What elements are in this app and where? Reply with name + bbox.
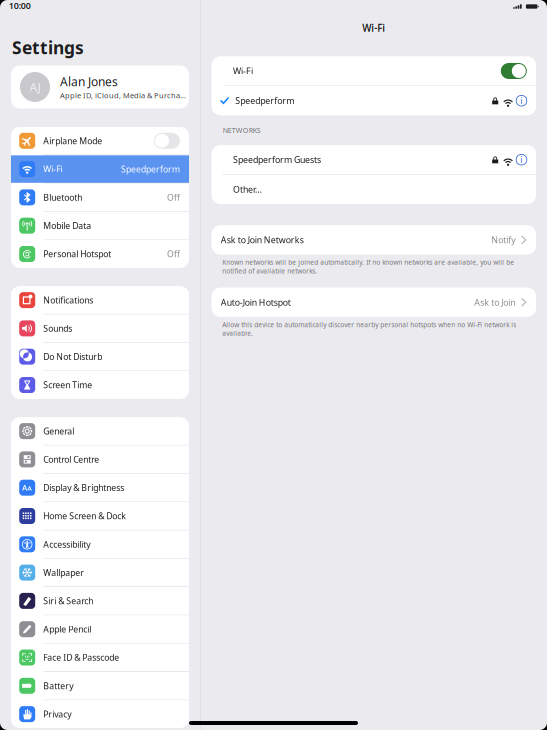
staticText: Airplane Mode xyxy=(43,135,102,146)
staticText: Control Centre xyxy=(43,454,99,465)
button[interactable]: Privacy xyxy=(11,700,189,728)
button[interactable]: Face ID & Passcode xyxy=(11,644,189,671)
staticText: Known networks will be joined automatica… xyxy=(222,258,514,275)
staticText: Settings xyxy=(12,36,84,59)
staticText: Allow this device to automatically disco… xyxy=(222,320,516,338)
button[interactable]: Control Centre xyxy=(11,446,189,473)
staticText: Sounds xyxy=(43,323,72,334)
button[interactable]: Notifications xyxy=(11,286,189,314)
button[interactable]: Home Screen & Dock xyxy=(11,502,189,530)
staticText: Screen Time xyxy=(43,379,92,391)
button[interactable]: Wallpaper xyxy=(11,559,189,586)
button[interactable]: Ask to Join Networks xyxy=(212,225,536,254)
staticText: Notify xyxy=(491,234,515,246)
staticText: Off xyxy=(167,192,180,203)
button[interactable]: Sounds xyxy=(11,315,189,342)
staticText: Display & Brightness xyxy=(43,482,124,493)
button[interactable]: Accessibility xyxy=(11,530,189,558)
button[interactable]: Apple Pencil xyxy=(11,615,189,643)
staticText: Speedperform xyxy=(235,95,294,107)
button[interactable]: Battery xyxy=(11,672,189,700)
button[interactable]: Wi-Fi xyxy=(212,56,536,85)
staticText: Ask to Join Networks xyxy=(221,234,304,246)
button[interactable]: Display & Brightness xyxy=(11,474,189,501)
button[interactable]: Speedperform xyxy=(212,86,536,115)
button[interactable]: Mobile Data xyxy=(11,212,189,239)
staticText: i xyxy=(520,95,522,107)
staticText: Mobile Data xyxy=(43,220,91,231)
button[interactable]: Screen Time xyxy=(11,371,189,399)
button[interactable]: AJ xyxy=(11,65,189,108)
staticText: Home Screen & Dock xyxy=(43,510,126,522)
staticText: Speedperform Guests xyxy=(233,154,321,166)
staticText: Face ID & Passcode xyxy=(43,652,119,663)
staticText: Do Not Disturb xyxy=(43,351,102,362)
staticText: NETWORKS xyxy=(223,125,261,135)
staticText: Off xyxy=(167,248,180,260)
staticText: Ask to Join xyxy=(474,296,515,308)
staticText: Wi-Fi xyxy=(362,21,385,34)
button[interactable]: Airplane Mode xyxy=(11,127,189,155)
staticText: Auto-Join Hotspot xyxy=(221,296,291,308)
staticText: Wallpaper xyxy=(43,567,84,578)
button[interactable]: Bluetooth xyxy=(11,184,189,211)
staticText: Wi-Fi xyxy=(43,163,62,175)
button[interactable]: Personal Hotspot xyxy=(11,240,189,268)
staticText: AJ xyxy=(29,79,40,95)
staticText: Notifications xyxy=(43,294,93,306)
staticText: Other… xyxy=(233,184,262,195)
button[interactable]: Siri & Search xyxy=(11,587,189,615)
staticText: 10:00 xyxy=(9,0,31,11)
staticText: Siri & Search xyxy=(43,595,93,607)
button[interactable]: Speedperform Guests xyxy=(212,145,536,174)
staticText: Personal Hotspot xyxy=(43,248,111,260)
button[interactable]: Auto-Join Hotspot xyxy=(212,288,536,317)
staticText: Apple Pencil xyxy=(43,623,91,635)
staticText: Alan Jones xyxy=(60,74,118,89)
staticText: General xyxy=(43,425,74,437)
staticText: i xyxy=(520,154,522,166)
staticText: Speedperform xyxy=(121,163,180,175)
staticText: Privacy xyxy=(43,708,71,720)
staticText: Apple ID, iCloud, Media & Purchases xyxy=(60,90,189,100)
staticText: Battery xyxy=(43,680,73,691)
button[interactable]: General xyxy=(11,417,189,445)
button[interactable]: Other… xyxy=(212,175,536,204)
button[interactable]: Wi-Fi xyxy=(11,155,189,183)
staticText: Wi-Fi xyxy=(233,65,253,77)
staticText: Accessibility xyxy=(43,538,90,550)
staticText: Bluetooth xyxy=(43,192,82,203)
button[interactable]: Do Not Disturb xyxy=(11,343,189,370)
